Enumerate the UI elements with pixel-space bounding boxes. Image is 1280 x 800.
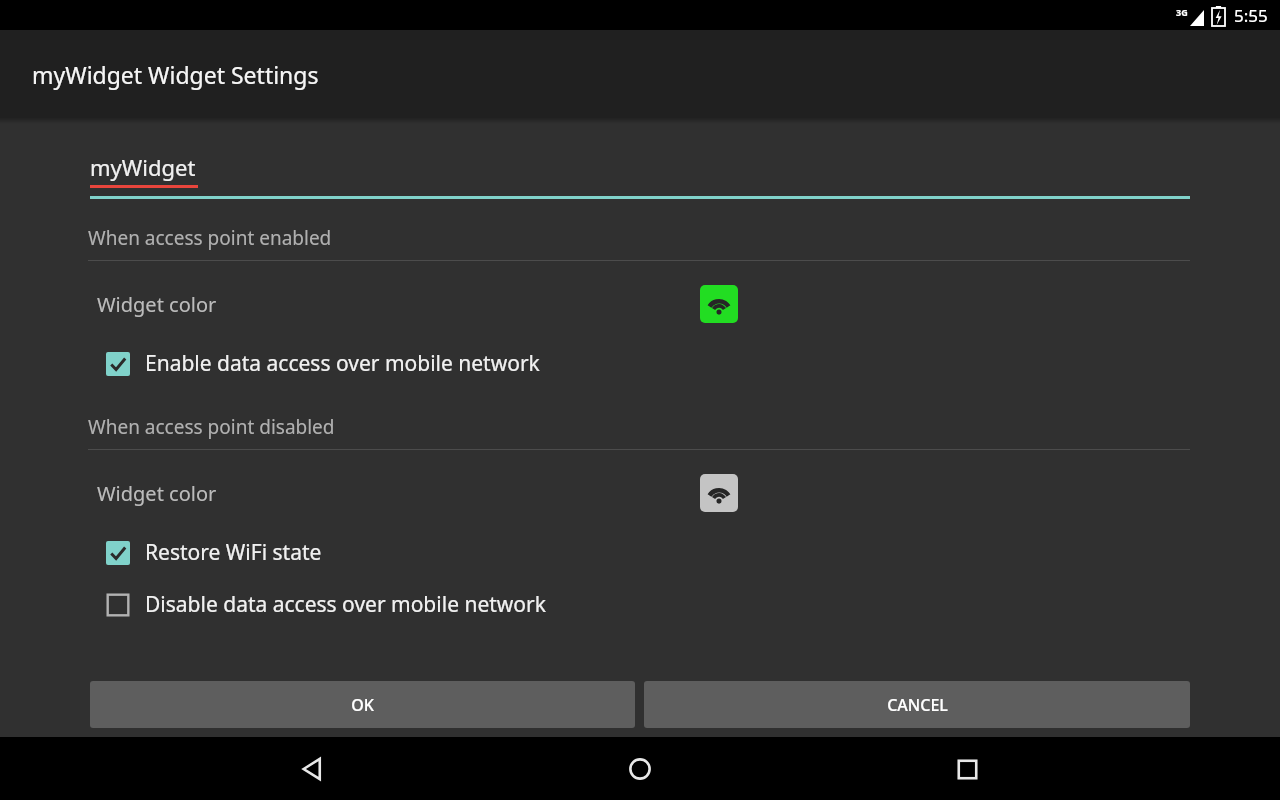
button[interactable]: Restore WiFi state [0, 532, 1280, 573]
staticText: Enable data access over mobile network [145, 349, 540, 378]
button[interactable]: Recent apps [939, 741, 995, 797]
button[interactable]: Disable data access over mobile network [0, 584, 1280, 625]
button[interactable]: Widget color [0, 470, 1280, 516]
staticText: 3G [1176, 6, 1188, 18]
button[interactable]: Home [612, 741, 668, 797]
staticText: Restore WiFi state [145, 538, 322, 567]
other: Widget color green [700, 285, 738, 323]
staticText: Widget color [97, 480, 217, 507]
staticText: myWidget [90, 152, 196, 182]
staticText: 5:55 [1234, 4, 1268, 27]
staticText: Widget color [97, 291, 217, 318]
button[interactable]: CANCEL [644, 681, 1190, 728]
staticText: OK [351, 694, 374, 716]
staticText: When access point disabled [88, 414, 335, 440]
staticText: CANCEL [887, 694, 948, 716]
button[interactable]: Back [285, 741, 341, 797]
staticText: When access point enabled [88, 225, 332, 251]
staticText: Disable data access over mobile network [145, 590, 546, 619]
button[interactable]: OK [90, 681, 635, 728]
button[interactable]: Widget color [0, 281, 1280, 327]
staticText: myWidget Widget Settings [32, 59, 319, 90]
other: Widget color grey [700, 474, 738, 512]
button[interactable]: Enable data access over mobile network [0, 343, 1280, 384]
